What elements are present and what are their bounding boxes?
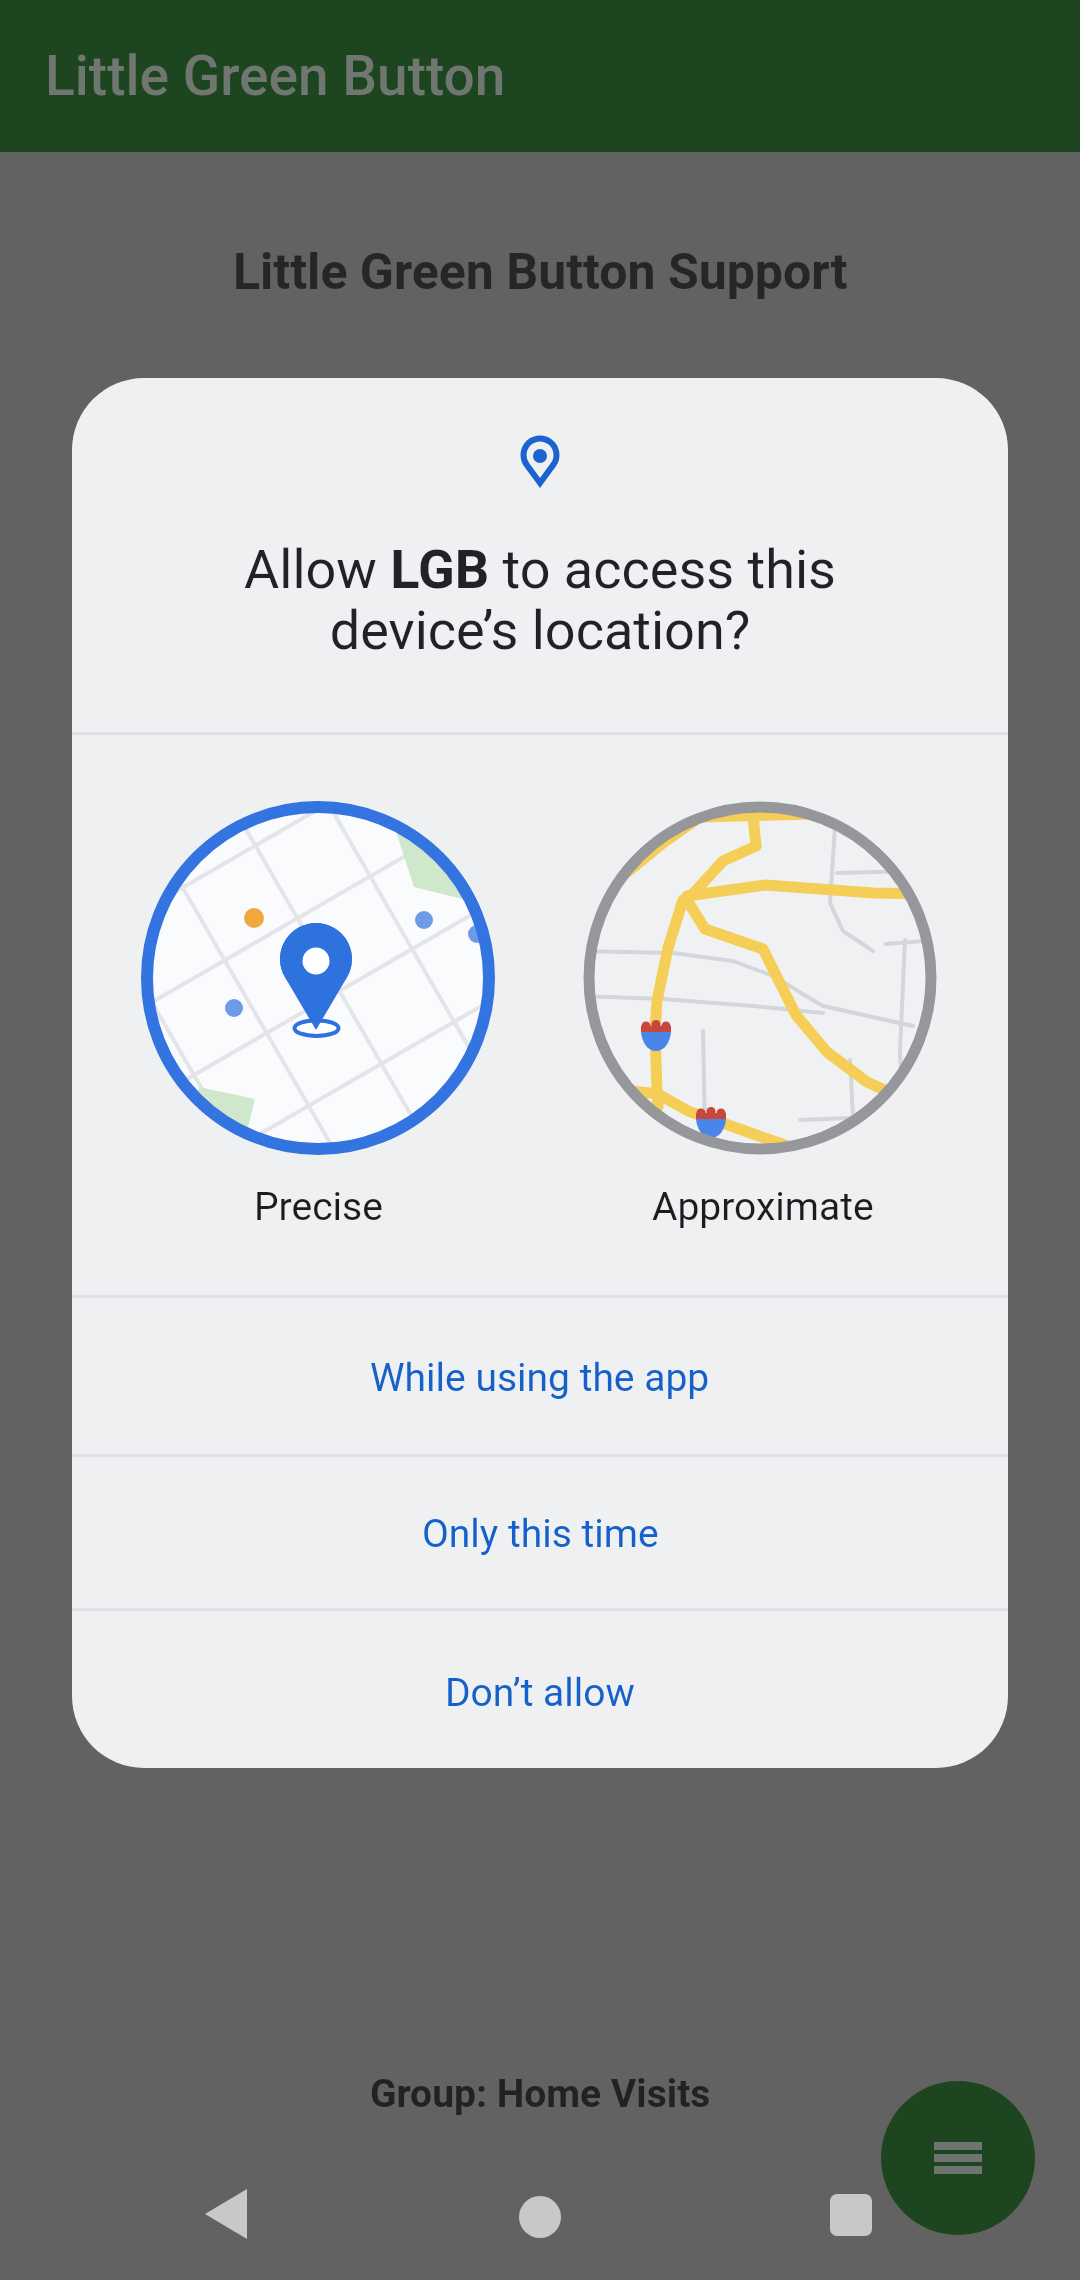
button[interactable]: Only this time: [72, 1460, 1008, 1608]
staticText: Approximate: [652, 1184, 874, 1230]
staticText: Allow LGB to access this device’s locati…: [72, 538, 1008, 662]
button[interactable]: [519, 2196, 561, 2238]
staticText: Group: Home Visits: [370, 2071, 711, 2117]
staticText: Precise: [254, 1184, 383, 1230]
staticText: While using the app: [370, 1355, 710, 1401]
button[interactable]: [881, 2081, 1035, 2235]
staticText: Little Green Button Support: [233, 243, 848, 302]
button[interactable]: [141, 801, 495, 1155]
button[interactable]: Don’t allow: [72, 1618, 1008, 1768]
button[interactable]: [203, 2187, 249, 2241]
button[interactable]: While using the app: [72, 1301, 1008, 1454]
staticText: Only this time: [422, 1511, 659, 1557]
staticText: Little Green Button: [45, 44, 506, 108]
button[interactable]: [830, 2194, 872, 2236]
staticText: Don’t allow: [445, 1670, 635, 1716]
button[interactable]: [583, 801, 937, 1155]
